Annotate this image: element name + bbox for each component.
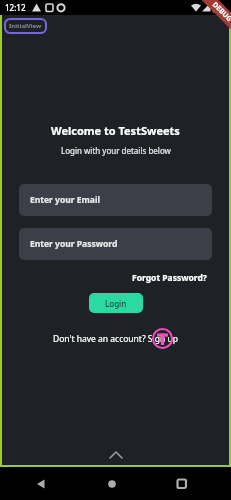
staticText: DEBUG	[210, 0, 231, 25]
staticText: InitialView	[9, 22, 42, 30]
staticText: 12:12	[5, 2, 26, 13]
staticText: Login	[105, 298, 127, 309]
button[interactable]	[32, 475, 50, 493]
staticText: Enter your Password	[30, 238, 118, 250]
staticText: Welcome to TestSweets	[51, 123, 180, 138]
button[interactable]: Enter your Email	[19, 184, 212, 216]
staticText: Login with your details below	[61, 145, 171, 156]
button[interactable]: Forgot Password?	[132, 272, 207, 284]
button[interactable]	[103, 475, 121, 493]
button[interactable]: Don't have an account? Sign up	[53, 333, 178, 345]
button[interactable]: Login	[89, 293, 143, 313]
staticText: Enter your Email	[30, 194, 100, 206]
button[interactable]	[173, 475, 191, 493]
button[interactable]: Enter your Password	[19, 228, 212, 260]
